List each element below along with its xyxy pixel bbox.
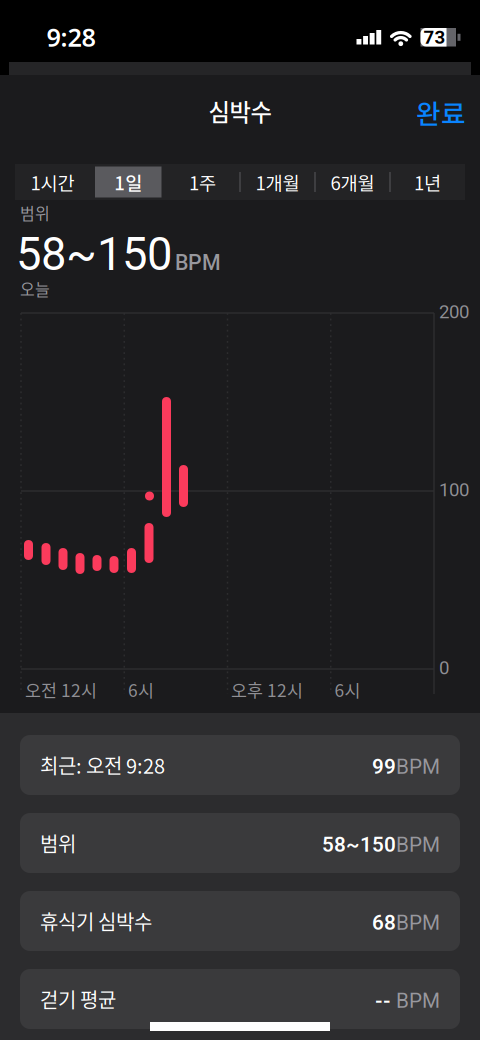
staticText: 58~150 — [16, 228, 172, 281]
button[interactable]: 1일 — [91, 164, 166, 200]
button[interactable]: 완료 — [406, 90, 476, 134]
staticText: BPM — [396, 754, 440, 779]
staticText: 범위 — [40, 828, 76, 857]
staticText: 73 — [423, 26, 445, 48]
staticText: 오후 12시 — [231, 677, 303, 702]
staticText: 99 — [372, 754, 396, 779]
staticText: 최근: 오전 9:28 — [40, 750, 165, 779]
button[interactable]: 6개월 — [315, 164, 390, 200]
staticText: 범위 — [20, 201, 50, 224]
staticText: 걷기 평균 — [40, 984, 116, 1013]
staticText: 1주 — [189, 168, 216, 195]
staticText: 100 — [439, 479, 469, 501]
staticText: 1일 — [114, 168, 142, 195]
staticText: 완료 — [416, 93, 466, 131]
staticText: BPM — [175, 250, 221, 275]
staticText: 1시간 — [30, 168, 74, 195]
button[interactable]: 1개월 — [240, 164, 315, 200]
staticText: 오늘 — [20, 277, 50, 300]
staticText: 1개월 — [255, 168, 299, 195]
staticText: 오전 12시 — [25, 677, 97, 702]
staticText: 0 — [439, 657, 449, 679]
staticText: 58~150 — [322, 832, 396, 857]
staticText: 1년 — [414, 168, 441, 195]
staticText: 6시 — [128, 677, 154, 702]
staticText: 9:28 — [46, 20, 95, 54]
staticText: BPM — [396, 832, 440, 857]
staticText: -- — [375, 988, 391, 1013]
staticText: 68 — [372, 910, 396, 935]
button[interactable]: 1주 — [165, 164, 240, 200]
staticText: BPM — [396, 910, 440, 935]
button[interactable]: 1시간 — [15, 164, 90, 200]
staticText: 6개월 — [330, 168, 374, 195]
staticText: 심박수 — [208, 94, 271, 128]
staticText: 6시 — [334, 677, 360, 702]
button[interactable]: 1년 — [390, 164, 465, 200]
staticText: 휴식기 심박수 — [40, 906, 152, 935]
staticText: BPM — [391, 988, 440, 1013]
staticText: 200 — [439, 301, 469, 323]
